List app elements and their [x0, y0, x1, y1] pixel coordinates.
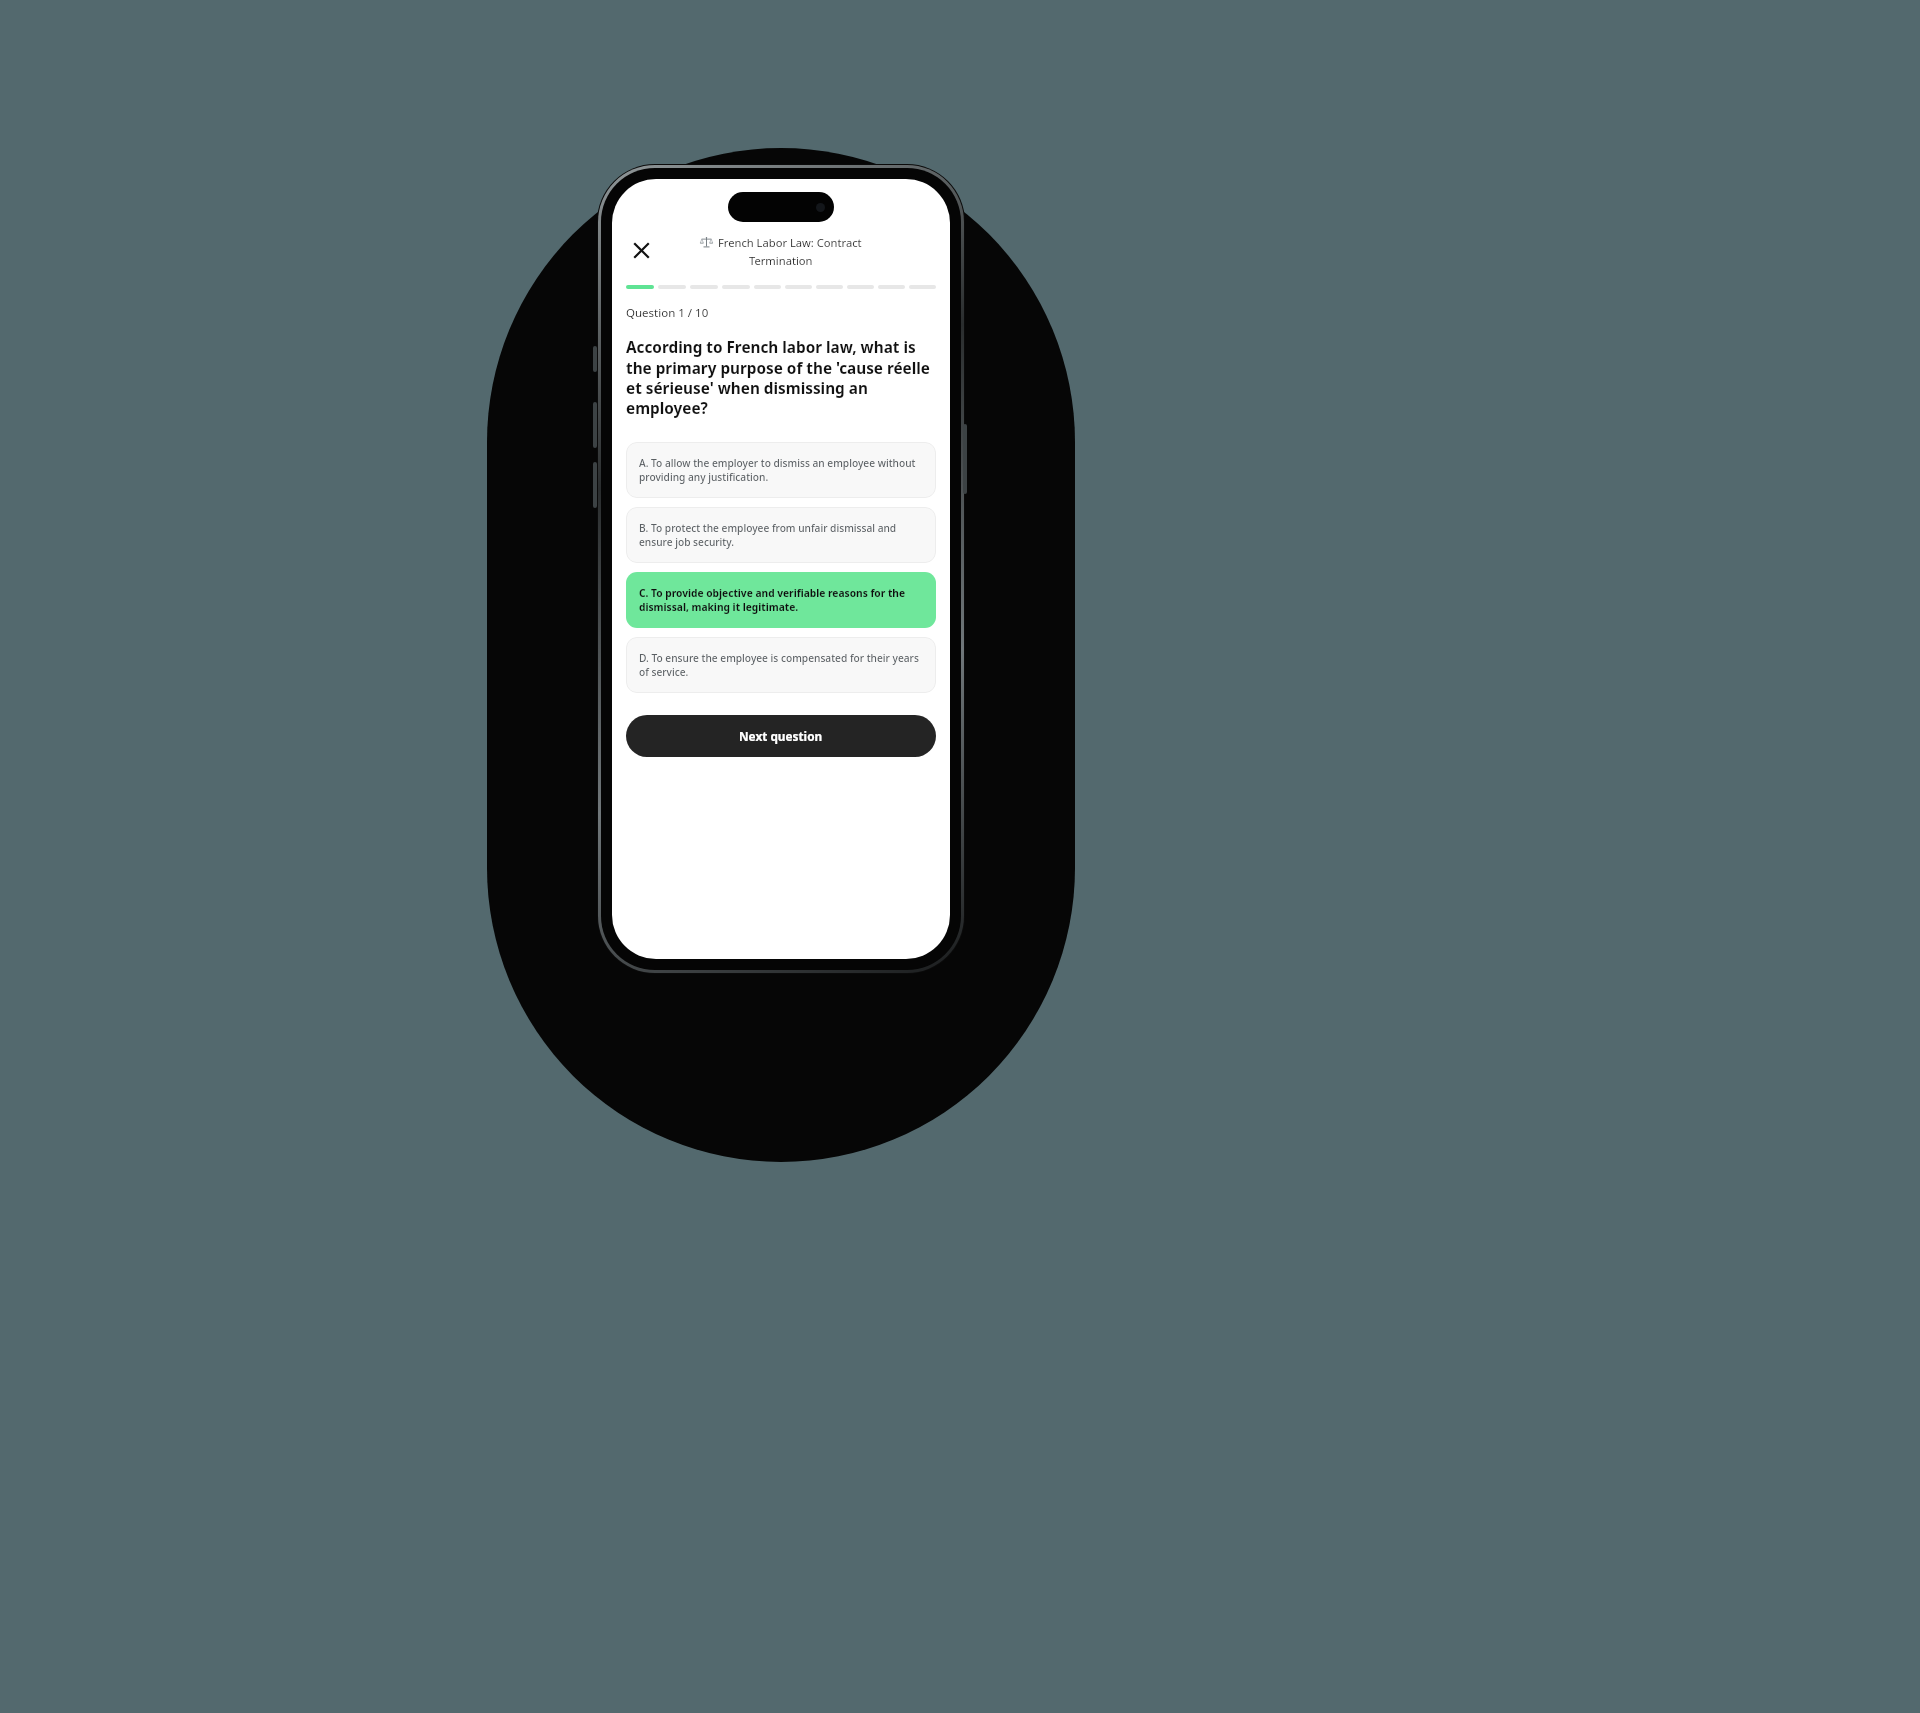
staticText: Next question: [739, 728, 823, 744]
button[interactable]: A. To allow the employer to dismiss an e…: [626, 442, 936, 498]
staticText: According to French labor law, what is t…: [626, 337, 936, 418]
button[interactable]: D. To ensure the employee is compensated…: [626, 637, 936, 693]
staticText: Termination: [749, 253, 813, 268]
button[interactable]: C. To provide objective and verifiable r…: [626, 572, 936, 628]
staticText: C. To provide objective and verifiable r…: [639, 586, 923, 614]
button[interactable]: Close: [626, 235, 656, 265]
staticText: French Labor Law: Contract: [718, 235, 862, 250]
button[interactable]: Next question: [626, 715, 936, 757]
staticText: A. To allow the employer to dismiss an e…: [639, 456, 923, 484]
staticText: D. To ensure the employee is compensated…: [639, 651, 923, 679]
staticText: Question 1 / 10: [626, 305, 709, 321]
staticText: B. To protect the employee from unfair d…: [639, 521, 923, 549]
button[interactable]: B. To protect the employee from unfair d…: [626, 507, 936, 563]
